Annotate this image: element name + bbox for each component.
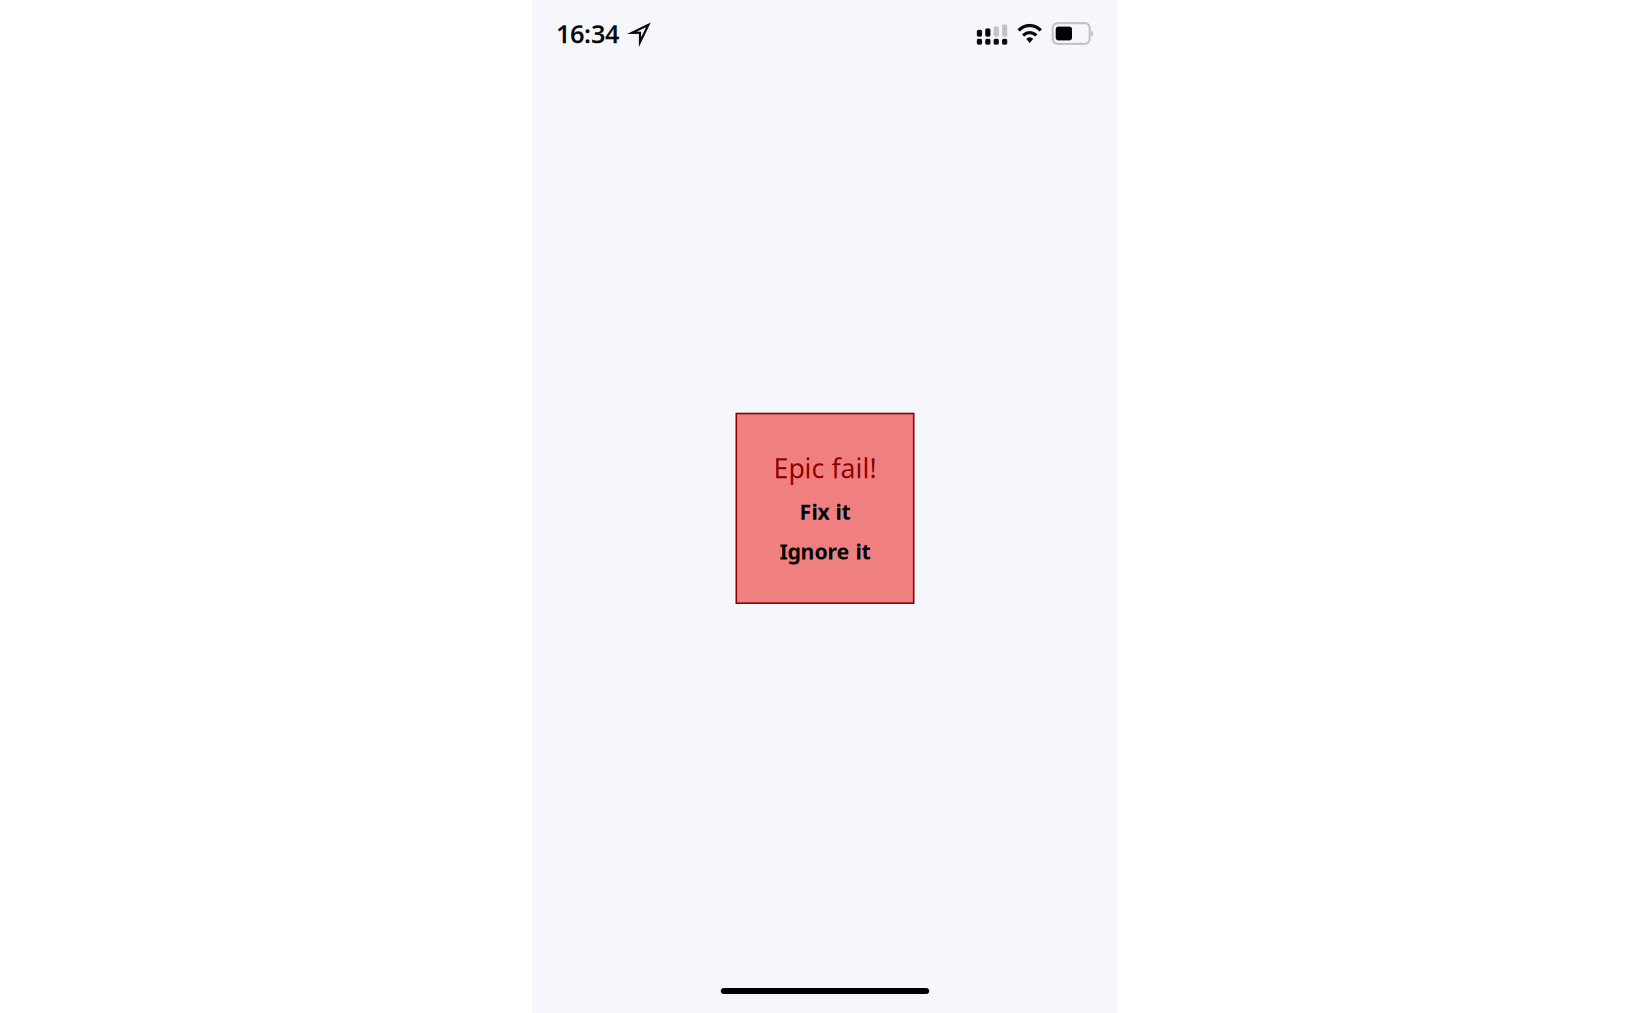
staticText: Ignore it <box>779 537 870 565</box>
staticText: Fix it <box>799 497 850 526</box>
staticText: 16:34 <box>556 17 619 50</box>
button[interactable]: Fix it <box>736 498 914 524</box>
button[interactable]: Ignore it <box>736 538 914 564</box>
staticText: Epic fail! <box>773 450 876 486</box>
